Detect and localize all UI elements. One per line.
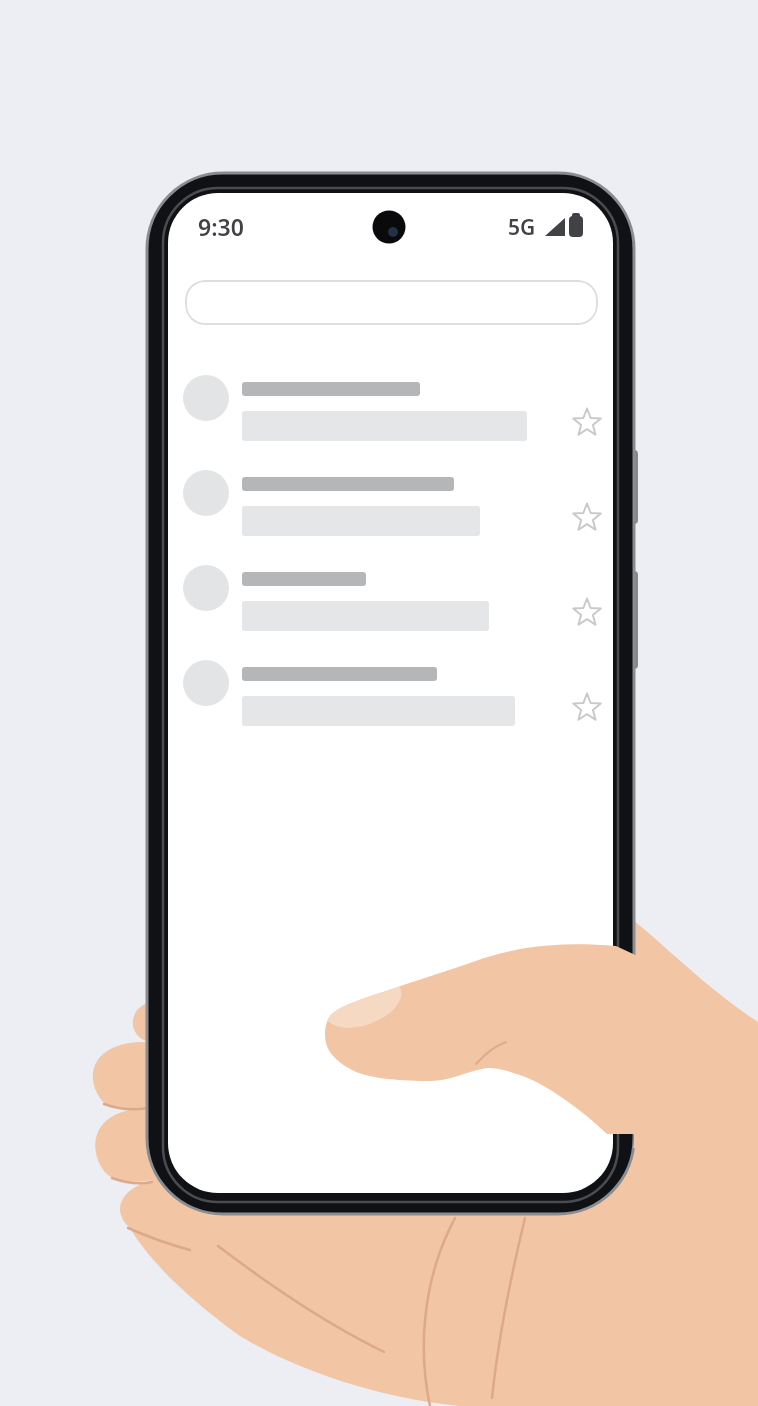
button[interactable]: [180, 563, 620, 633]
staticText: 5G: [508, 213, 536, 242]
button[interactable]: [570, 501, 604, 535]
button[interactable]: [570, 691, 604, 725]
button[interactable]: [180, 373, 620, 443]
staticText: 9:30: [198, 211, 244, 242]
button[interactable]: [570, 406, 604, 440]
button[interactable]: [180, 658, 620, 728]
button[interactable]: [570, 596, 604, 630]
button[interactable]: [185, 280, 598, 325]
button[interactable]: [180, 468, 620, 538]
